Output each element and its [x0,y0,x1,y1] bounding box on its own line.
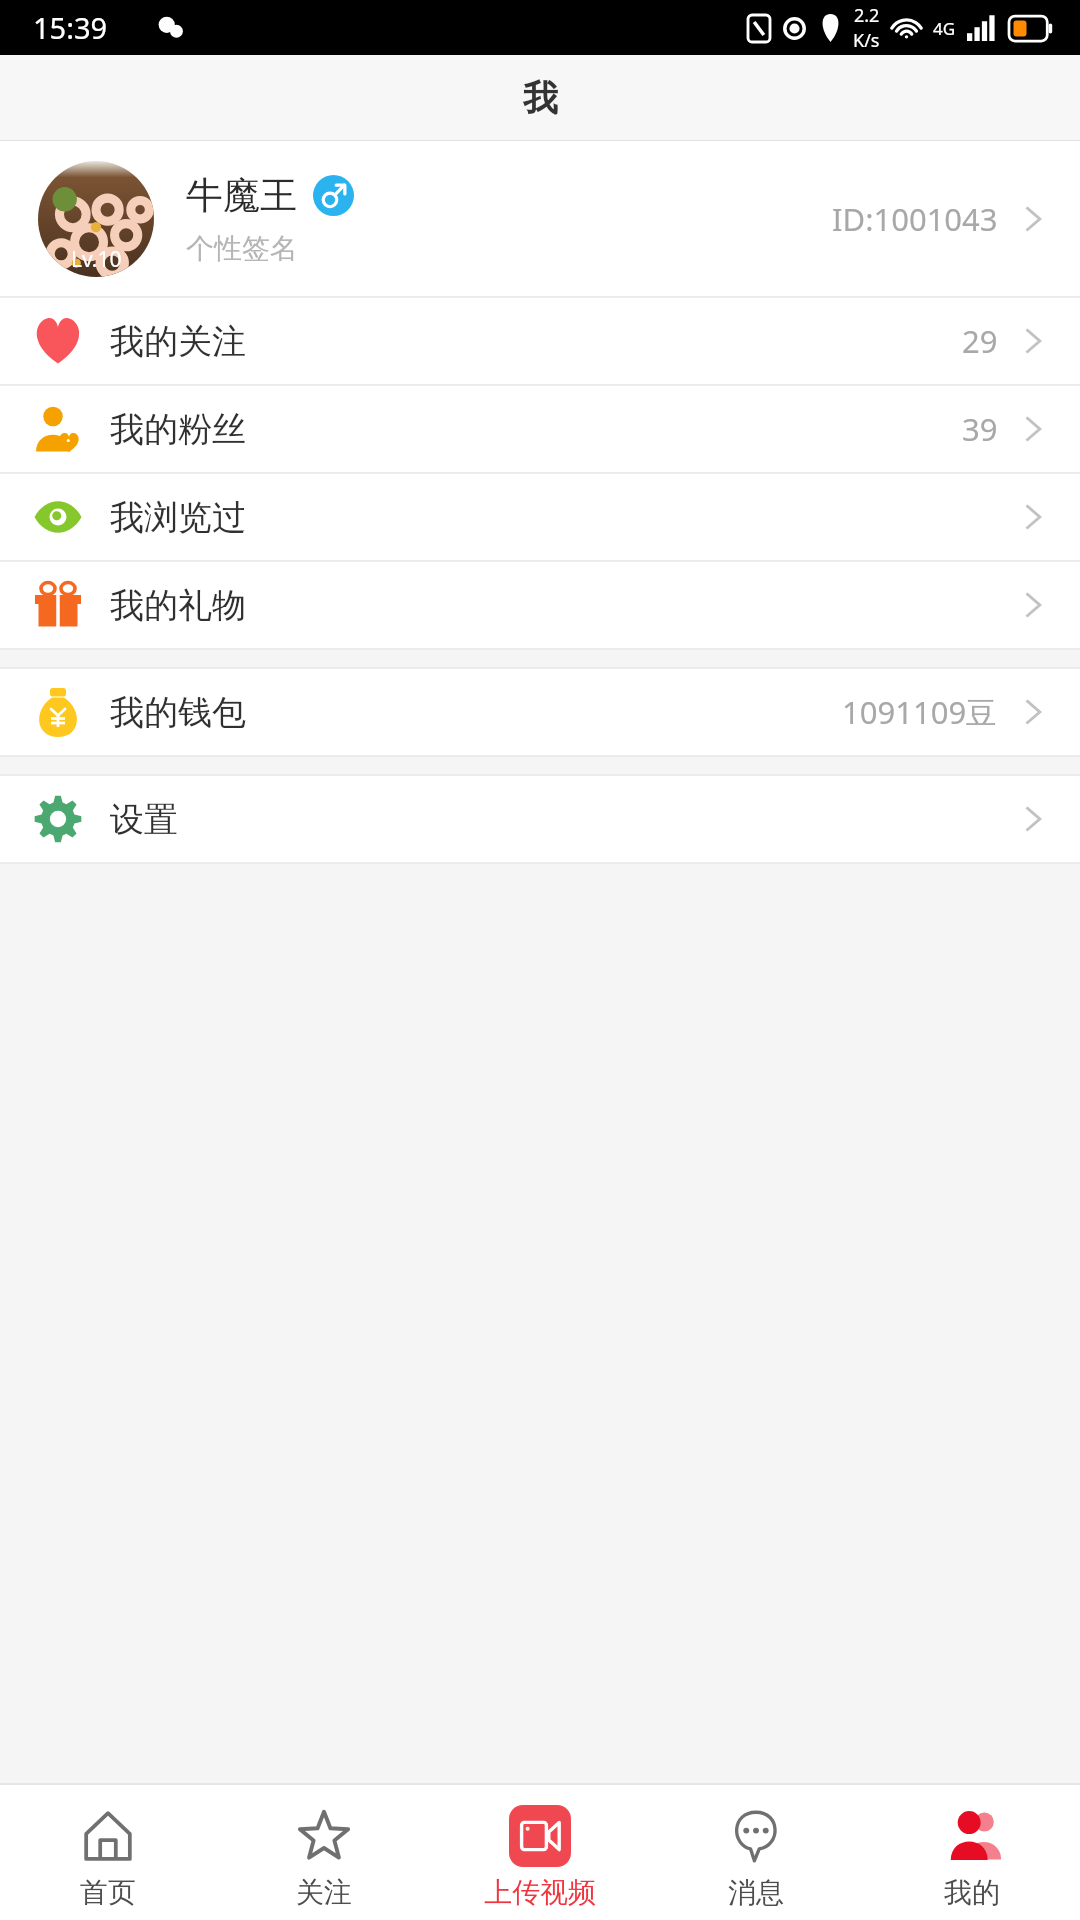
staticText: 29 [962,320,998,362]
staticText: 我的钱包 [110,691,246,734]
button[interactable]: 我的礼物 [0,562,1080,648]
staticText: 我的礼物 [110,584,246,627]
button[interactable]: Messages [648,1785,864,1920]
button[interactable]: Lv.10 [0,141,1080,296]
staticText: 2.2 [854,3,880,28]
staticText: ID:1001043 [832,198,998,240]
staticText: 个性签名 [186,231,298,266]
button[interactable]: 我浏览过 [0,474,1080,560]
staticText: 关注 [296,1875,352,1910]
button[interactable]: Mine [864,1785,1080,1920]
staticText: 我浏览过 [110,496,246,539]
staticText: 设置 [110,798,178,841]
staticText: 上传视频 [484,1875,596,1910]
staticText: 4G [933,17,956,40]
staticText: 我的粉丝 [110,408,246,451]
button[interactable]: 设置 [0,776,1080,862]
staticText: 首页 [80,1875,136,1910]
staticText: Lv.10 [71,245,122,274]
staticText: 15:39 [33,8,108,47]
staticText: 我 [523,76,558,120]
button[interactable]: 我的关注 [0,298,1080,384]
staticText: 牛魔王 [186,172,297,219]
staticText: 我的关注 [110,320,246,363]
staticText: 我的 [944,1875,1000,1910]
staticText: 消息 [728,1875,784,1910]
button[interactable]: Home [0,1785,216,1920]
button[interactable]: Upload video [432,1785,648,1920]
staticText: K/s [853,28,880,53]
staticText: 1091109豆 [842,691,998,733]
button[interactable]: 我的粉丝 [0,386,1080,472]
button[interactable]: Following [216,1785,432,1920]
staticText: 39 [962,408,998,450]
button[interactable]: 我的钱包 [0,669,1080,755]
